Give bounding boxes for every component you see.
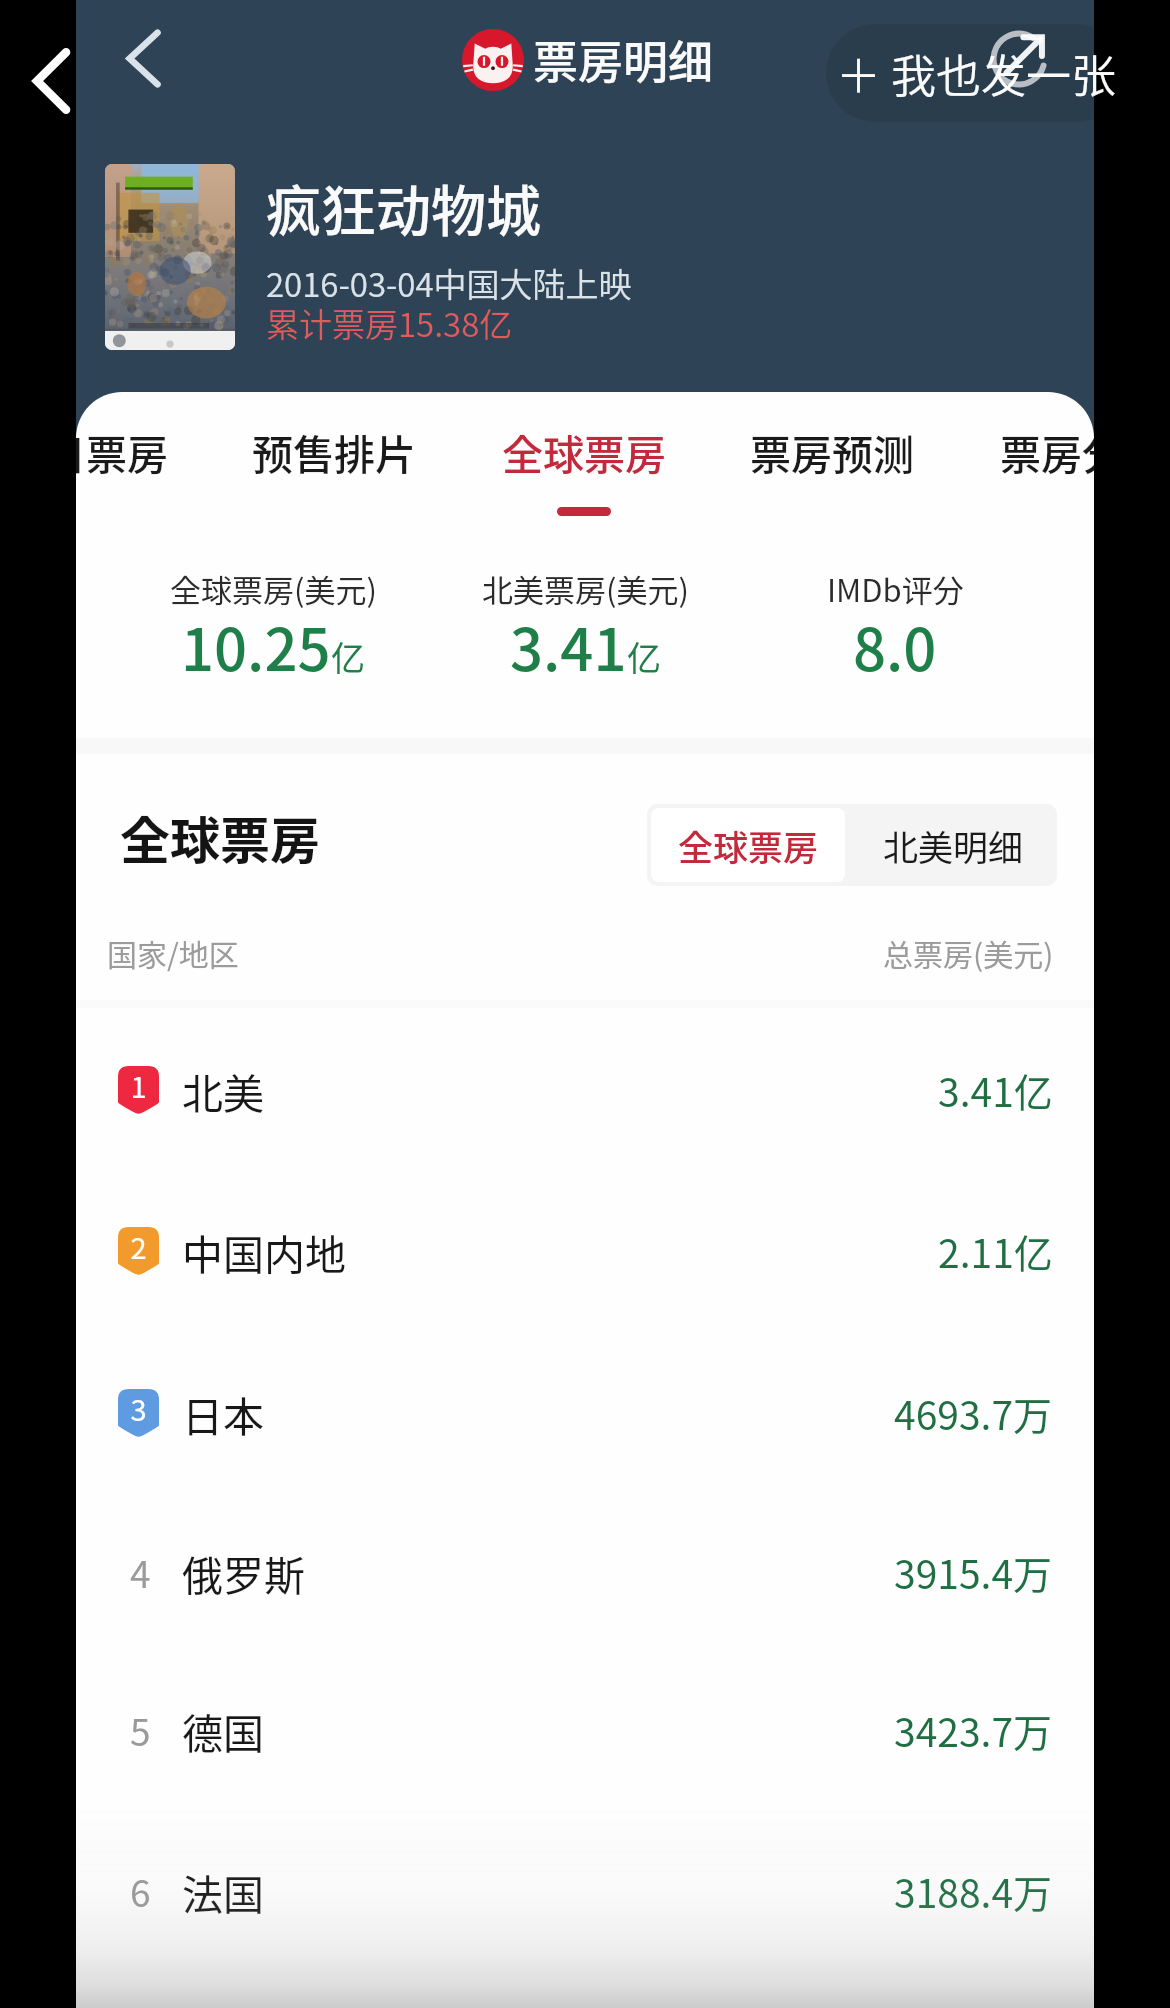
button[interactable]: 1 <box>76 1010 1094 1170</box>
staticText: IMDb评分 <box>827 566 964 611</box>
staticText: 亿 <box>627 632 661 681</box>
staticText: 2.11亿 <box>938 1223 1053 1279</box>
staticText: 法国 <box>182 1862 264 1921</box>
button[interactable]: 4 <box>76 1492 1094 1652</box>
staticText: 3915.4万 <box>894 1544 1053 1600</box>
staticText: 3.41亿 <box>938 1062 1053 1118</box>
staticText: 3423.7万 <box>894 1702 1053 1758</box>
staticText: 北美 <box>182 1061 264 1120</box>
staticText: ＋ 我也发一张 <box>836 41 1117 106</box>
button[interactable]: 6 <box>76 1811 1094 1971</box>
staticText: 北美明细 <box>883 820 1024 871</box>
staticText: 8.0 <box>853 604 937 688</box>
staticText: 北美票房(美元) <box>482 566 689 611</box>
staticText: 国家/地区 <box>107 931 239 974</box>
staticText: 俄罗斯 <box>182 1543 305 1602</box>
staticText: 2 <box>130 1225 147 1267</box>
button[interactable]: 5 <box>76 1650 1094 1810</box>
button[interactable]: ＋ 我也发一张 <box>826 24 1126 122</box>
staticText: 票房明细 <box>533 27 714 92</box>
staticText: 日本 <box>182 1384 264 1443</box>
staticText: 4 <box>130 1545 151 1599</box>
staticText: 1 <box>130 1064 147 1106</box>
button[interactable]: 全球票房 <box>480 414 688 524</box>
staticText: 累计票房15.38亿 <box>266 299 513 347</box>
button[interactable]: 预售排片 <box>230 414 438 489</box>
staticText: 4693.7万 <box>894 1385 1053 1441</box>
button[interactable]: 票房预测 <box>728 414 936 489</box>
staticText: 5 <box>130 1703 151 1757</box>
staticText: 亿 <box>331 632 365 681</box>
button[interactable]: 北美明细 <box>849 804 1057 886</box>
button[interactable]: 票房分析 <box>978 414 1094 489</box>
staticText: 票房预测 <box>750 422 914 481</box>
staticText: 全球票房(美元) <box>170 566 377 611</box>
staticText: 2016-03-04中国大陆上映 <box>266 259 632 307</box>
button[interactable]: System back <box>22 44 80 118</box>
staticText: 6 <box>130 1864 151 1918</box>
button[interactable]: 票房明细 <box>455 20 715 98</box>
staticText: 10.25 <box>181 604 331 688</box>
staticText: 全球票房 <box>678 820 819 871</box>
button[interactable]: 全球票房 <box>651 808 845 882</box>
staticText: 票房分析 <box>1000 422 1094 481</box>
button[interactable]: Back <box>115 22 171 95</box>
staticText: 全球票房 <box>120 801 320 873</box>
button[interactable]: 日票房 <box>76 414 190 489</box>
staticText: 日票房 <box>76 422 168 481</box>
staticText: 3188.4万 <box>894 1863 1053 1919</box>
staticText: 德国 <box>182 1701 264 1760</box>
staticText: 3.41 <box>510 604 627 688</box>
button[interactable]: 3 <box>76 1333 1094 1493</box>
staticText: 预售排片 <box>252 422 416 481</box>
staticText: 疯狂动物城 <box>266 167 542 247</box>
staticText: 全球票房 <box>502 422 666 481</box>
staticText: 总票房(美元) <box>883 931 1054 974</box>
button[interactable]: 2 <box>76 1171 1094 1331</box>
staticText: 中国内地 <box>182 1222 346 1281</box>
staticText: 3 <box>130 1387 147 1429</box>
button[interactable]: Share <box>988 28 1050 90</box>
